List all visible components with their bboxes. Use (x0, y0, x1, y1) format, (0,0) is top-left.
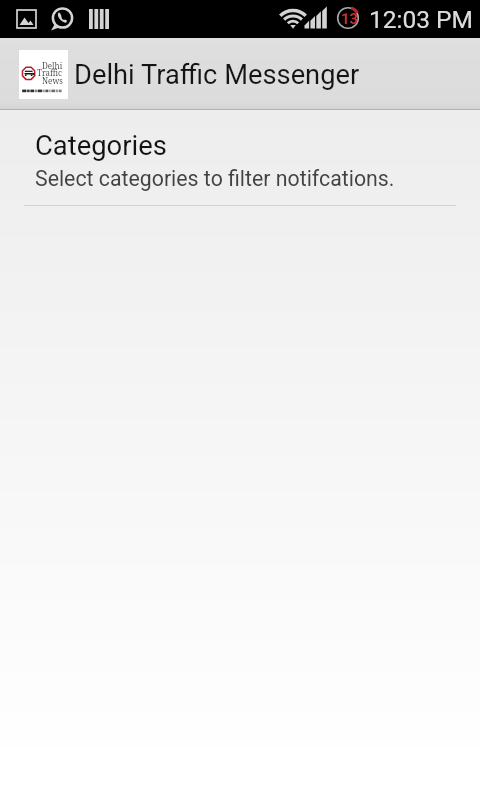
button[interactable]: Delhi Traffic News app icon, navigate ho… (19, 50, 68, 99)
button[interactable]: Delhi Traffic Messenger (74, 59, 360, 91)
staticText: News (42, 75, 63, 86)
staticText: Delhi (42, 60, 63, 71)
staticText: Traffic (37, 67, 62, 78)
staticText: Select categories to filter notifcations… (35, 166, 395, 191)
staticText: 12:03 PM (369, 5, 473, 34)
staticText: Categories (35, 130, 167, 162)
staticText: 13 (341, 10, 359, 28)
